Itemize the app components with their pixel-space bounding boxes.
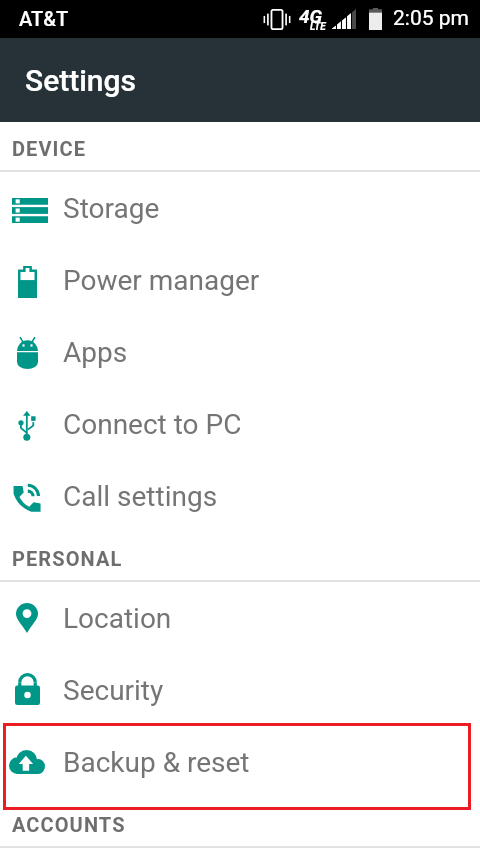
button[interactable]: Connect to PC	[0, 388, 480, 460]
staticText: Storage	[63, 192, 160, 225]
staticText: 4G	[299, 5, 323, 27]
staticText: Connect to PC	[63, 408, 242, 441]
staticText: Settings	[25, 63, 137, 98]
staticText: Backup & reset	[63, 746, 250, 779]
button[interactable]: Backup & reset	[0, 726, 480, 798]
button[interactable]: Security	[0, 654, 480, 726]
button[interactable]: Power manager	[0, 244, 480, 316]
staticText: ACCOUNTS	[12, 813, 126, 836]
staticText: LTE	[310, 21, 326, 33]
staticText: Power manager	[63, 264, 260, 297]
staticText: Security	[63, 674, 164, 707]
button[interactable]: Apps	[0, 316, 480, 388]
staticText: Apps	[63, 336, 128, 369]
staticText: Location	[63, 602, 172, 635]
button[interactable]: Call settings	[0, 460, 480, 532]
staticText: AT&T	[19, 7, 69, 30]
button[interactable]: Location	[0, 582, 480, 654]
staticText: DEVICE	[12, 137, 87, 160]
button[interactable]: Storage	[0, 172, 480, 244]
staticText: PERSONAL	[12, 547, 123, 570]
staticText: Call settings	[63, 480, 218, 513]
staticText: 2:05 pm	[393, 6, 469, 31]
